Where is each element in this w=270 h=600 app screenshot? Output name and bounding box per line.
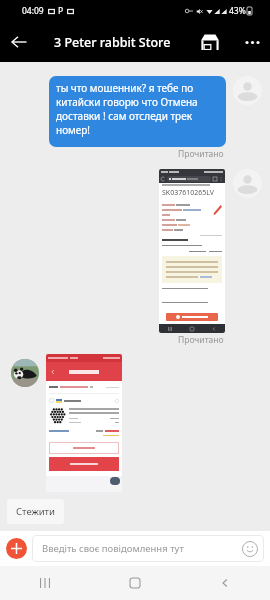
button[interactable]: ты что мошенник? я тебе по китайски гово…: [49, 76, 226, 147]
staticText: Прочитано: [178, 148, 224, 160]
button[interactable]: Recents: [0, 566, 90, 600]
button[interactable]: Emoji: [240, 539, 260, 559]
staticText: Прочитано: [178, 334, 224, 346]
button[interactable]: Add attachment: [6, 538, 27, 559]
staticText: 43%: [229, 5, 246, 17]
button[interactable]: More options: [235, 25, 269, 59]
button[interactable]: SK037610265LV: [159, 169, 225, 333]
button[interactable]: Home: [90, 566, 180, 600]
staticText: SK037610265LV: [162, 188, 214, 198]
button[interactable]: [46, 354, 122, 492]
button[interactable]: Back: [0, 23, 38, 61]
staticText: Стежити: [16, 505, 55, 518]
staticText: P: [58, 5, 64, 17]
button[interactable]: Store: [193, 25, 227, 59]
staticText: Введіть своє повідомлення тут: [42, 542, 184, 555]
staticText: ты что мошенник? я тебе по китайски гово…: [56, 81, 219, 137]
button[interactable]: Стежити: [7, 499, 64, 524]
staticText: 04:09: [22, 5, 44, 17]
button[interactable]: Back: [180, 566, 270, 600]
button[interactable]: Введіть своє повідомлення тут: [32, 535, 264, 562]
staticText: 3 Peter rabbit Store: [54, 34, 171, 51]
